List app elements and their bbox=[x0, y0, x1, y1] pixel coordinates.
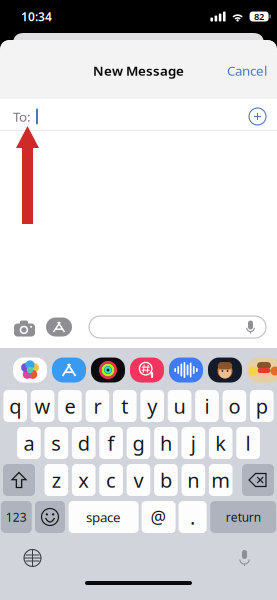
staticText: . bbox=[190, 504, 195, 530]
staticText: @ bbox=[151, 505, 167, 528]
staticText: i bbox=[204, 393, 209, 419]
staticText: Cancel bbox=[227, 62, 267, 79]
button[interactable]: Shift bbox=[3, 464, 35, 496]
button[interactable]: Camera bbox=[0, 309, 46, 345]
staticText: j bbox=[191, 430, 196, 456]
staticText: c bbox=[106, 467, 116, 493]
button[interactable]: v bbox=[127, 464, 150, 496]
button[interactable]: space bbox=[69, 501, 139, 533]
button[interactable]: e bbox=[58, 390, 82, 422]
button[interactable]: Cancel bbox=[219, 55, 275, 86]
button[interactable]: s bbox=[44, 427, 68, 459]
button[interactable]: Memoji bbox=[208, 357, 242, 382]
button[interactable]: w bbox=[31, 390, 54, 422]
button[interactable]: h bbox=[154, 427, 178, 459]
button[interactable]: Apps bbox=[46, 309, 89, 344]
button[interactable]: o bbox=[223, 390, 246, 422]
staticText: p bbox=[256, 393, 268, 419]
button[interactable]: l bbox=[236, 427, 260, 459]
staticText: t bbox=[121, 393, 128, 419]
staticText: New Message bbox=[93, 62, 184, 79]
button[interactable]: j bbox=[181, 427, 205, 459]
button[interactable]: Delete bbox=[242, 464, 274, 496]
staticText: 10:34 bbox=[21, 8, 52, 24]
button[interactable]: p bbox=[250, 390, 274, 422]
button[interactable]: Emoji bbox=[35, 501, 65, 533]
staticText: f bbox=[108, 430, 115, 456]
staticText: a bbox=[23, 430, 34, 456]
staticText: l bbox=[246, 430, 251, 456]
staticText: return bbox=[226, 509, 261, 525]
button[interactable]: d bbox=[72, 427, 95, 459]
button[interactable]: Images bbox=[130, 357, 164, 382]
button[interactable]: n bbox=[181, 464, 205, 496]
button[interactable]: @ bbox=[142, 501, 176, 533]
staticText: d bbox=[78, 430, 90, 456]
staticText: v bbox=[133, 467, 143, 493]
button[interactable]: Message text field bbox=[89, 316, 277, 338]
button[interactable]: f bbox=[99, 427, 123, 459]
staticText: x bbox=[78, 467, 89, 493]
button[interactable]: Dictate bbox=[239, 550, 250, 566]
staticText: o bbox=[228, 393, 240, 419]
button[interactable]: k bbox=[209, 427, 232, 459]
button[interactable]: m bbox=[209, 464, 232, 496]
staticText: q bbox=[9, 393, 21, 419]
button[interactable]: z bbox=[44, 464, 68, 496]
staticText: w bbox=[35, 393, 51, 419]
button[interactable]: App Store bbox=[52, 357, 86, 382]
button[interactable]: Fitness bbox=[91, 357, 125, 382]
staticText: b bbox=[160, 467, 172, 493]
button[interactable]: c bbox=[99, 464, 123, 496]
staticText: n bbox=[187, 467, 199, 493]
button[interactable]: y bbox=[140, 390, 164, 422]
button[interactable]: . bbox=[179, 501, 207, 533]
staticText: h bbox=[160, 430, 172, 456]
button[interactable]: x bbox=[72, 464, 95, 496]
button[interactable]: Photos bbox=[13, 357, 47, 382]
staticText: s bbox=[51, 430, 61, 456]
staticText: 123 bbox=[6, 509, 27, 525]
staticText: z bbox=[52, 467, 61, 493]
button[interactable]: Memoji sticker bbox=[247, 357, 277, 382]
button[interactable]: Add contact bbox=[239, 102, 277, 131]
button[interactable]: return bbox=[210, 501, 276, 533]
button[interactable]: Audio message bbox=[169, 357, 203, 382]
staticText: g bbox=[132, 430, 144, 456]
button[interactable]: u bbox=[168, 390, 191, 422]
button[interactable]: q bbox=[3, 390, 27, 422]
button[interactable]: t bbox=[113, 390, 137, 422]
staticText: 82 bbox=[254, 10, 264, 23]
staticText: To: bbox=[13, 108, 31, 125]
staticText: k bbox=[215, 430, 226, 456]
staticText: u bbox=[174, 393, 186, 419]
button[interactable]: 123 bbox=[1, 501, 32, 533]
staticText: m bbox=[211, 467, 230, 493]
button[interactable]: Switch keyboard bbox=[24, 549, 41, 566]
button[interactable]: b bbox=[154, 464, 178, 496]
staticText: r bbox=[93, 393, 101, 419]
staticText: space bbox=[86, 508, 121, 526]
staticText: e bbox=[64, 393, 75, 419]
staticText: y bbox=[147, 393, 157, 419]
button[interactable]: r bbox=[86, 390, 109, 422]
button[interactable]: i bbox=[195, 390, 219, 422]
button[interactable]: g bbox=[127, 427, 150, 459]
button[interactable]: a bbox=[17, 427, 41, 459]
